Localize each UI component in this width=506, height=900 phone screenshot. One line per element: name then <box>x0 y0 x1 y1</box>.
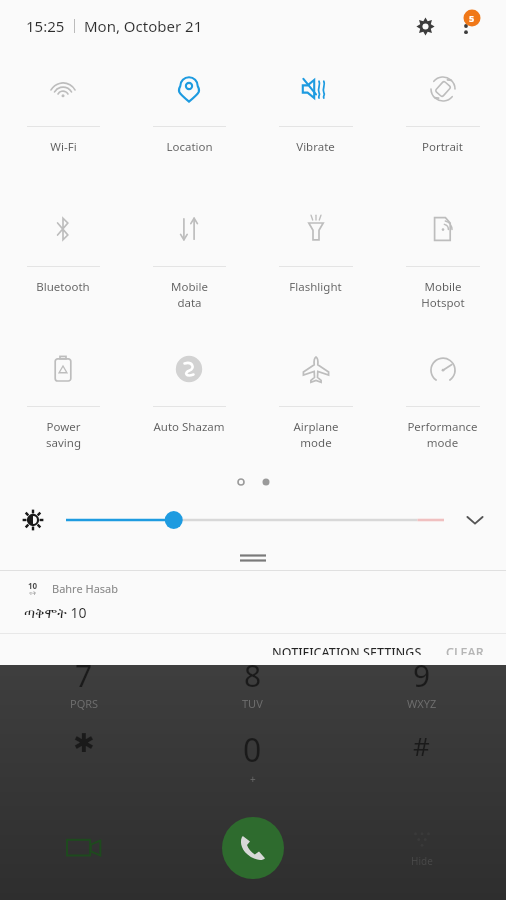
button[interactable]: Auto Shazam <box>126 338 252 478</box>
staticText: 10 <box>28 580 38 591</box>
staticText: Mon, October 21 <box>84 16 203 36</box>
staticText: Airplane mode <box>293 419 339 450</box>
button[interactable]: Bluetooth <box>0 198 126 338</box>
staticText: ✱ <box>73 728 95 758</box>
staticText: Bluetooth <box>36 279 90 295</box>
staticText: + <box>250 772 256 786</box>
button[interactable]: Mobile Hotspot <box>379 198 506 338</box>
staticText: 7 <box>75 655 93 696</box>
staticText: Power saving <box>46 419 81 450</box>
staticText: Mobile data <box>171 279 208 310</box>
staticText: 5 <box>469 12 475 24</box>
button[interactable]: Expand <box>458 503 492 537</box>
button[interactable]: Flashlight <box>252 198 379 338</box>
button[interactable]: CLEAR <box>436 634 506 665</box>
button[interactable]: 7 <box>0 655 168 711</box>
button[interactable]: NOTIFICATION SETTINGS <box>258 634 436 665</box>
staticText: Performance mode <box>407 419 478 450</box>
button[interactable]: 10 <box>0 571 506 633</box>
staticText: 9 <box>413 655 431 696</box>
staticText: Wi-Fi <box>50 139 77 155</box>
button[interactable]: 0 <box>168 728 337 786</box>
staticText: Bahre Hasab <box>52 581 119 596</box>
staticText: Vibrate <box>296 139 335 155</box>
staticText: TUV <box>242 696 263 711</box>
button[interactable]: 9 <box>337 655 506 711</box>
staticText: Location <box>166 139 213 155</box>
button[interactable]: # <box>337 728 506 763</box>
button[interactable]: Vibrate <box>252 58 379 198</box>
staticText: CLEAR <box>446 644 484 655</box>
staticText: ጣቅሞት 10 <box>24 603 87 622</box>
button[interactable]: Mobile data <box>126 198 252 338</box>
staticText: 15:25 <box>26 16 65 36</box>
button[interactable]: More options <box>450 7 488 45</box>
staticText: NOTIFICATION SETTINGS <box>272 644 422 655</box>
staticText: Mobile Hotspot <box>421 279 465 310</box>
staticText: Portrait <box>422 139 463 155</box>
button[interactable]: Call <box>168 812 337 884</box>
staticText: 8 <box>244 655 262 696</box>
button[interactable]: Performance mode <box>379 338 506 478</box>
button[interactable]: ✱ <box>0 728 168 758</box>
staticText: 0 <box>243 728 262 772</box>
staticText: Hide <box>411 854 433 868</box>
button[interactable]: Wi-Fi <box>0 58 126 198</box>
staticText: # <box>413 728 430 763</box>
button[interactable]: Power saving <box>0 338 126 478</box>
button[interactable]: Settings <box>406 7 444 45</box>
staticText: ጥቅ <box>29 591 37 596</box>
button[interactable]: Portrait <box>379 58 506 198</box>
staticText: WXYZ <box>407 696 437 711</box>
staticText: PQRS <box>70 696 99 711</box>
button[interactable]: 8 <box>168 655 337 711</box>
staticText: Auto Shazam <box>153 419 225 435</box>
button[interactable]: Brightness <box>66 504 444 536</box>
button[interactable]: Video call <box>0 812 168 884</box>
button[interactable]: Location <box>126 58 252 198</box>
button[interactable]: Airplane mode <box>252 338 379 478</box>
staticText: Flashlight <box>289 279 342 295</box>
